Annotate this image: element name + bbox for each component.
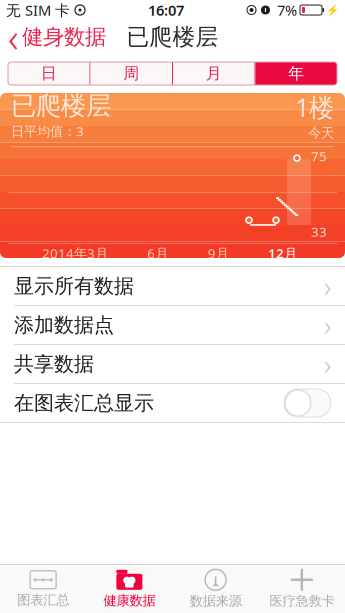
staticText: ‹ [8, 10, 19, 63]
staticText: 周 [123, 64, 139, 83]
staticText: 已爬楼层 [126, 23, 218, 51]
staticText: 1楼 [295, 90, 334, 124]
staticText: 图表汇总 [17, 592, 69, 608]
staticText: ⚡ [326, 4, 339, 16]
staticText: 33 [311, 223, 327, 240]
staticText: 共享数据 [14, 352, 94, 376]
staticText: 今天 [308, 125, 334, 141]
staticText: 75 [311, 147, 327, 165]
staticText: 16:07 [148, 0, 184, 20]
button[interactable]: ‹ [0, 20, 114, 54]
staticText: 7% [273, 0, 297, 20]
staticText: 健身数据 [22, 24, 106, 50]
staticText: 数据来源 [190, 593, 242, 609]
button[interactable]: 年 [255, 62, 337, 85]
staticText: 在图表汇总显示 [14, 391, 154, 415]
staticText: 日 [41, 64, 57, 83]
button[interactable]: 周 [90, 62, 172, 85]
staticText: 日平均值：3 [11, 122, 84, 140]
staticText: 显示所有数据 [14, 274, 134, 298]
staticText: 9月 [208, 244, 229, 262]
staticText: 已爬楼层 [11, 90, 111, 121]
button[interactable]: 健康数据 [86, 565, 172, 613]
button[interactable]: 图表汇总 [0, 565, 86, 613]
button[interactable]: 医疗急救卡 [259, 565, 345, 613]
button[interactable]: 日 [8, 62, 89, 85]
staticText: 6月 [147, 244, 168, 262]
staticText: 无 SIM 卡 [6, 0, 70, 20]
staticText: 12月 [268, 244, 297, 262]
staticText: › [324, 345, 331, 383]
button[interactable]: 共享数据 [0, 345, 345, 384]
staticText: › [324, 267, 331, 305]
button[interactable]: 月 [173, 62, 254, 85]
staticText: › [324, 306, 331, 344]
staticText: 健康数据 [103, 592, 155, 609]
staticText: 添加数据点 [14, 313, 114, 337]
button[interactable]: 数据来源 [172, 565, 259, 613]
staticText: 年 [288, 64, 304, 83]
button[interactable]: 显示所有数据 [0, 267, 345, 306]
staticText: 月 [206, 64, 222, 83]
staticText: 2014年3月 [42, 244, 108, 262]
button[interactable]: 添加数据点 [0, 306, 345, 345]
button[interactable]: 在图表汇总显示 [0, 384, 345, 423]
staticText: 医疗急救卡 [269, 593, 334, 609]
